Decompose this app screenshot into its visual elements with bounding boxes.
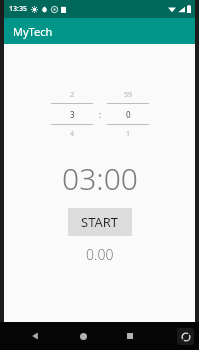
staticText: 03:00 [62, 158, 138, 199]
staticText: 0.00 [86, 245, 114, 264]
staticText: 3 [70, 109, 75, 120]
button[interactable]: Home [71, 324, 95, 348]
staticText: 1 [126, 129, 131, 139]
button[interactable]: Rotate screen [177, 328, 194, 345]
button[interactable]: Number picker [51, 86, 93, 142]
button[interactable]: Recent apps [118, 324, 142, 348]
staticText: START [81, 213, 119, 231]
staticText: MyTech [13, 24, 53, 39]
button[interactable]: START [68, 208, 132, 236]
button[interactable]: Back [23, 324, 47, 348]
staticText: : [99, 109, 102, 120]
staticText: 0 [126, 109, 131, 120]
staticText: 13:35 [9, 4, 27, 14]
button[interactable]: Number picker [107, 86, 149, 142]
staticText: 4 [70, 129, 75, 139]
staticText: 2 [70, 90, 75, 100]
staticText: 59 [124, 90, 133, 100]
